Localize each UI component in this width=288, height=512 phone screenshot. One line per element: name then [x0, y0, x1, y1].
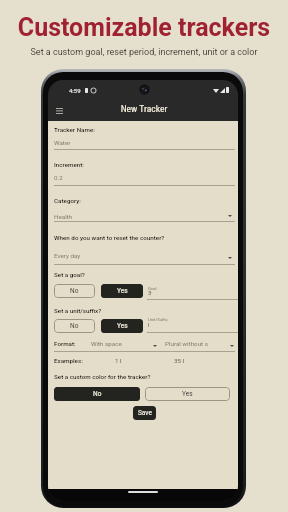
staticText: Increment: — [54, 161, 85, 168]
staticText: Set a custom color for the tracker? — [54, 373, 151, 380]
button[interactable]: Open navigation menu — [52, 103, 66, 117]
staticText: Save — [138, 409, 152, 417]
staticText: New Tracker — [49, 103, 238, 114]
staticText: Yes — [117, 287, 128, 295]
staticText: 3 — [148, 289, 152, 296]
staticText: 1 l — [115, 357, 122, 364]
staticText: 0.2 — [54, 174, 63, 181]
button[interactable]: Yes — [101, 284, 143, 298]
button[interactable]: No — [54, 387, 140, 401]
staticText: Unit/Suffix — [148, 317, 168, 322]
staticText: 4:59 — [69, 87, 81, 94]
button[interactable]: No — [54, 319, 95, 333]
button[interactable]: No — [54, 284, 95, 298]
staticText: When do you want to reset the counter? — [54, 234, 165, 241]
staticText: With space — [91, 340, 122, 347]
staticText: Health — [54, 213, 73, 220]
staticText: Goal — [148, 286, 157, 291]
button[interactable]: Yes — [101, 319, 143, 333]
staticText: Water — [54, 139, 71, 146]
staticText: No — [70, 287, 79, 295]
button[interactable]: Yes — [145, 387, 230, 401]
staticText: Customizable trackers — [0, 13, 288, 42]
button[interactable]: Save — [133, 406, 156, 420]
staticText: Every day — [54, 252, 81, 259]
staticText: 35 l — [174, 357, 185, 364]
staticText: Yes — [182, 390, 193, 398]
staticText: Tracker Name: — [54, 126, 95, 133]
staticText: Format: — [54, 340, 76, 347]
staticText: Category: — [54, 197, 81, 204]
staticText: No — [93, 390, 102, 398]
staticText: Yes — [117, 322, 128, 330]
staticText: No — [70, 322, 79, 330]
staticText: Examples: — [54, 357, 83, 364]
staticText: l — [148, 321, 150, 328]
staticText: Plural without s — [165, 340, 208, 347]
staticText: Set a unit/suffix? — [54, 307, 102, 314]
staticText: Set a custom goal, reset period, increme… — [0, 47, 288, 58]
staticText: Set a goal? — [54, 271, 85, 278]
